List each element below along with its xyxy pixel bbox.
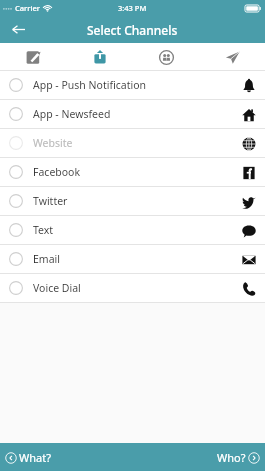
staticText: Email [33, 252, 60, 266]
staticText: Website [33, 136, 73, 150]
button[interactable]: Contacts [133, 43, 199, 71]
button[interactable]: Voice Dial [0, 274, 265, 303]
button[interactable]: Send [199, 43, 265, 71]
button[interactable]: Twitter [0, 187, 265, 216]
button[interactable]: What? [5, 450, 51, 465]
staticText: Select Channels [87, 22, 178, 38]
staticText: Carrier [15, 3, 40, 13]
button[interactable]: Text [0, 216, 265, 245]
staticText: App - Newsfeed [33, 107, 111, 121]
button[interactable]: Compose [0, 43, 67, 71]
button[interactable]: Back [0, 16, 36, 43]
button[interactable]: Facebook [0, 158, 265, 187]
button[interactable]: Email [0, 245, 265, 274]
button[interactable]: App - Push Notification [0, 71, 265, 100]
staticText: App - Push Notification [33, 78, 146, 92]
staticText: Voice Dial [33, 281, 81, 295]
staticText: Facebook [33, 165, 81, 179]
staticText: 3:43 PM [118, 3, 147, 13]
staticText: Who? [217, 450, 246, 465]
button[interactable]: App - Newsfeed [0, 100, 265, 129]
button[interactable]: Who? [217, 450, 260, 465]
staticText: What? [19, 450, 51, 465]
staticText: Twitter [33, 194, 68, 208]
button[interactable]: Share [67, 43, 133, 71]
staticText: Text [33, 223, 54, 237]
button[interactable]: Website [0, 129, 265, 158]
